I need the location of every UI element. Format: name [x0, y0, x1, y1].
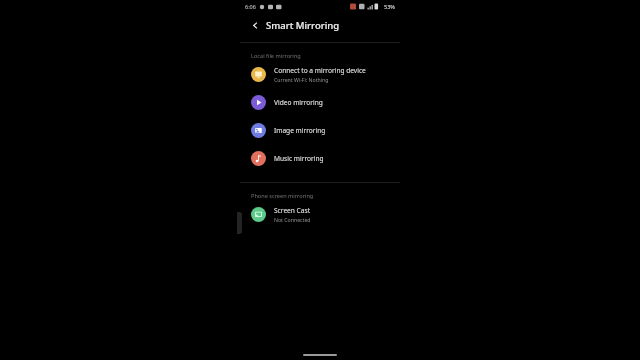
staticText: Connect to a mirroring device	[274, 66, 366, 75]
staticText: Phone screen mirroring	[251, 192, 314, 200]
button[interactable]: Music mirroring	[240, 144, 400, 172]
staticText: Not Connected	[274, 216, 311, 223]
staticText: 53%	[384, 3, 395, 10]
staticText: Music mirroring	[274, 154, 324, 163]
staticText: Smart Mirroring	[266, 19, 340, 32]
staticText: 6:06	[245, 3, 256, 10]
staticText: Current Wi-Fi: Nothing	[274, 76, 329, 83]
staticText: Image mirroring	[274, 126, 326, 135]
button[interactable]: Connect to a mirroring device	[240, 60, 400, 88]
staticText: Local file mirroring	[251, 52, 301, 60]
staticText: Video mirroring	[274, 98, 323, 107]
staticText: Screen Cast	[274, 206, 311, 215]
button[interactable]: Screen Cast	[240, 200, 400, 228]
button[interactable]: Video mirroring	[240, 88, 400, 116]
button[interactable]: Image mirroring	[240, 116, 400, 144]
button[interactable]: Back	[248, 18, 262, 32]
